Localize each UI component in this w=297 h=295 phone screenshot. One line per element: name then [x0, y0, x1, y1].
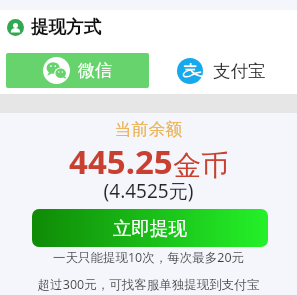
staticText: 当前余额	[0, 119, 297, 140]
staticText: 一天只能提现10次，每次最多20元	[0, 249, 297, 266]
staticText: 微信	[78, 60, 112, 81]
staticText: 提现方式	[31, 16, 101, 38]
staticText: 445.25	[69, 139, 173, 184]
staticText: (4.4525元)	[0, 178, 297, 204]
staticText: 立即提现	[113, 217, 187, 240]
button[interactable]: 立即提现	[32, 209, 268, 247]
staticText: 支付宝	[213, 60, 266, 82]
button[interactable]: 支付宝	[177, 53, 266, 88]
button[interactable]: 微信	[6, 53, 149, 88]
button[interactable]: Account	[7, 11, 101, 43]
staticText: 金币	[173, 148, 229, 183]
staticText: 超过300元，可找客服单独提现到支付宝	[0, 276, 297, 293]
other: Account	[7, 19, 24, 36]
